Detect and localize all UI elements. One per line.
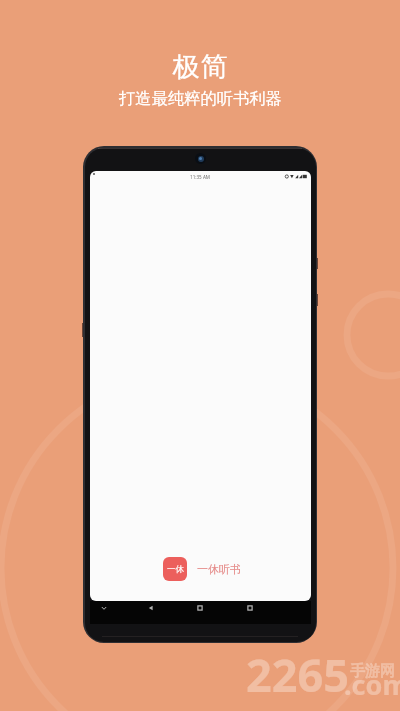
staticText: 一休 xyxy=(167,564,184,575)
staticText: 一休听书 xyxy=(197,562,241,576)
staticText: 11:35 AM xyxy=(190,174,211,180)
button[interactable]: 一休 xyxy=(163,557,241,581)
button[interactable]: Recent apps xyxy=(239,601,261,615)
staticText: 打造最纯粹的听书利器 xyxy=(119,88,282,109)
staticText: .com xyxy=(344,666,400,703)
button[interactable]: Home xyxy=(189,601,211,615)
staticText: 2265 xyxy=(246,644,349,705)
staticText: 极简 xyxy=(172,50,228,84)
staticText: 手游网 xyxy=(350,662,395,681)
button[interactable]: Back xyxy=(140,601,162,615)
button[interactable]: Hide keyboard xyxy=(93,601,115,615)
